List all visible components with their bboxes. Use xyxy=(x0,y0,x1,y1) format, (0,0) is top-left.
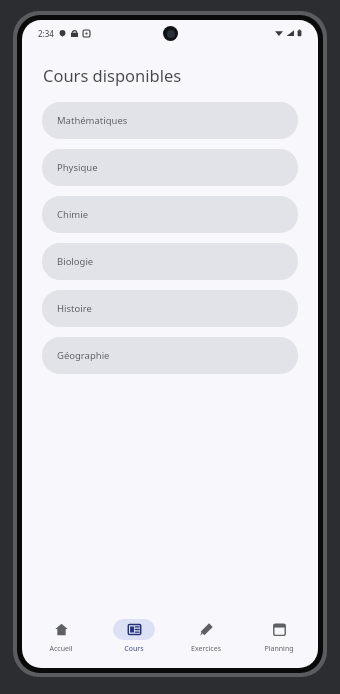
staticText: Mathématiques xyxy=(57,114,128,127)
staticText: Planning xyxy=(264,644,294,654)
button[interactable]: Cours xyxy=(101,616,167,657)
button[interactable]: Planning xyxy=(246,616,312,657)
staticText: Physique xyxy=(57,161,98,174)
button[interactable]: Biologie xyxy=(42,243,298,280)
staticText: Géographie xyxy=(57,349,110,362)
other: Accueil xyxy=(55,623,68,636)
staticText: Cours xyxy=(124,644,144,654)
button[interactable]: Chimie xyxy=(42,196,298,233)
other: Planning xyxy=(273,623,286,636)
button[interactable]: Exercices xyxy=(173,616,239,657)
staticText: Histoire xyxy=(57,302,92,315)
button[interactable]: Accueil xyxy=(28,616,94,657)
button[interactable]: Physique xyxy=(42,149,298,186)
staticText: Chimie xyxy=(57,208,89,221)
other: Exercices xyxy=(200,623,213,636)
other: Cours xyxy=(128,623,141,636)
button[interactable]: Mathématiques xyxy=(42,102,298,139)
button[interactable]: Géographie xyxy=(42,337,298,374)
staticText: Accueil xyxy=(49,644,73,654)
staticText: Biologie xyxy=(57,255,94,268)
staticText: 2:34 xyxy=(38,28,54,39)
button[interactable]: Histoire xyxy=(42,290,298,327)
staticText: Exercices xyxy=(191,644,221,654)
staticText: Cours disponibles xyxy=(43,64,182,86)
